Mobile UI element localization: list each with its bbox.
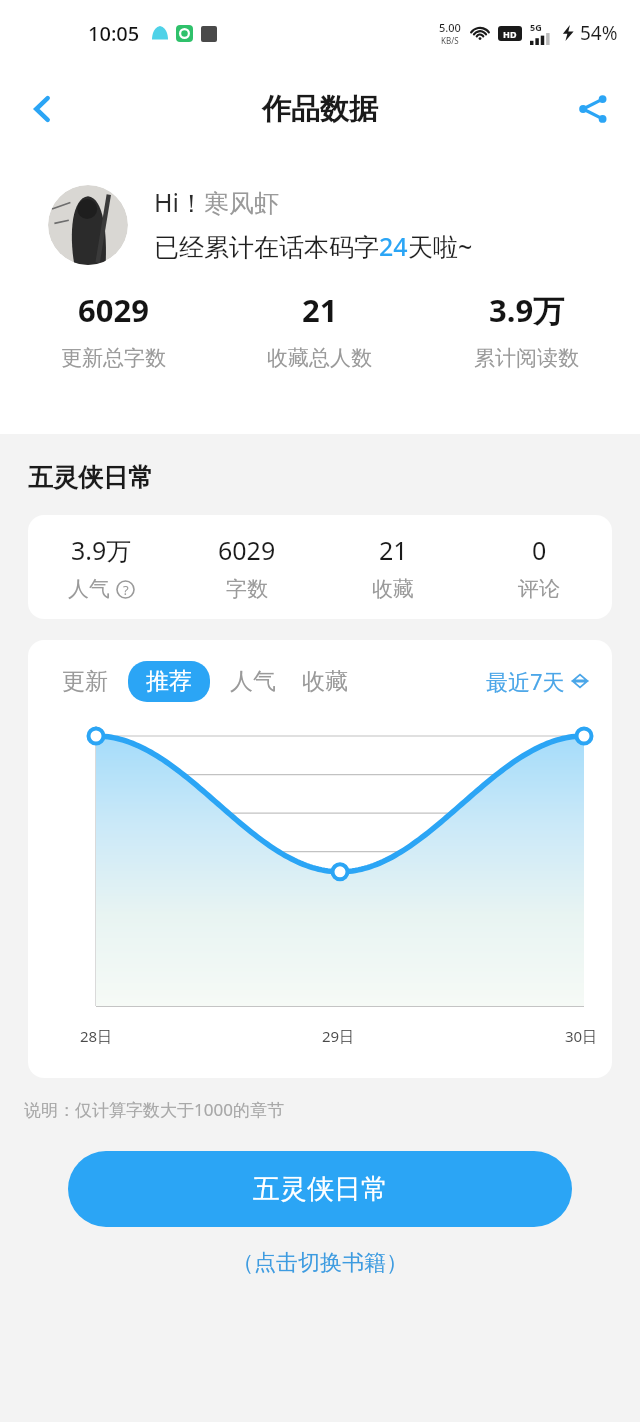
button[interactable]: Back bbox=[16, 82, 70, 136]
staticText: 更新总字数 bbox=[61, 345, 166, 371]
staticText: 字数 bbox=[226, 576, 268, 602]
staticText: 收藏总人数 bbox=[267, 345, 372, 371]
button[interactable]: （点击切换书籍） bbox=[224, 1241, 416, 1285]
button[interactable]: 3.9万 bbox=[28, 515, 612, 619]
button[interactable]: 3.9万 bbox=[28, 533, 174, 602]
staticText: 累计阅读数 bbox=[474, 345, 579, 371]
button[interactable]: 3.9万 bbox=[423, 289, 630, 371]
staticText: 6029 bbox=[218, 533, 276, 567]
button[interactable]: Share bbox=[566, 82, 620, 136]
staticText: 21 bbox=[302, 289, 338, 331]
staticText: 收藏 bbox=[372, 576, 414, 602]
button[interactable]: 推荐 bbox=[128, 661, 210, 702]
staticText: 5.00 bbox=[439, 20, 461, 35]
staticText: 24 bbox=[379, 229, 408, 263]
staticText: Hi！ bbox=[154, 185, 204, 219]
staticText: 天啦~ bbox=[408, 229, 473, 263]
button[interactable]: 21 bbox=[216, 289, 423, 371]
staticText: 说明：仅计算字数大于1000的章节 bbox=[24, 1098, 284, 1121]
staticText: 30日 bbox=[565, 1026, 598, 1046]
button[interactable]: 0 bbox=[466, 533, 612, 602]
button[interactable]: 6029 bbox=[174, 533, 320, 602]
staticText: 更新 bbox=[62, 667, 108, 696]
staticText: 3.9万 bbox=[489, 289, 565, 331]
button[interactable]: 五灵侠日常 bbox=[68, 1151, 572, 1227]
button[interactable]: 更新 bbox=[62, 661, 108, 702]
button[interactable]: 人气 bbox=[230, 661, 276, 702]
staticText: 最近7天 bbox=[486, 666, 565, 696]
staticText: HD bbox=[503, 28, 517, 40]
staticText: 已经累计在话本码字 bbox=[154, 232, 379, 263]
staticText: 五灵侠日常 bbox=[253, 1172, 388, 1206]
staticText: KB/S bbox=[441, 35, 459, 46]
staticText: 10:05 bbox=[88, 20, 140, 47]
staticText: 0 bbox=[532, 533, 547, 567]
staticText: 21 bbox=[379, 533, 408, 567]
button[interactable]: 收藏 bbox=[302, 661, 348, 702]
staticText: ? bbox=[123, 581, 129, 599]
staticText: （点击切换书籍） bbox=[232, 1249, 408, 1277]
button[interactable]: 最近7天 bbox=[486, 660, 588, 702]
staticText: 28日 bbox=[80, 1026, 113, 1046]
staticText: 人气 bbox=[230, 667, 276, 696]
staticText: 评论 bbox=[518, 576, 560, 602]
staticText: 寒风虾 bbox=[204, 188, 279, 219]
staticText: 五灵侠日常 bbox=[28, 462, 153, 493]
staticText: 3.9万 bbox=[71, 533, 132, 567]
staticText: 29日 bbox=[322, 1026, 355, 1046]
staticText: 5G bbox=[530, 21, 542, 33]
button[interactable]: 6029 bbox=[10, 289, 216, 371]
staticText: 6029 bbox=[78, 289, 149, 331]
staticText: 作品数据 bbox=[262, 91, 378, 128]
button[interactable]: 21 bbox=[320, 533, 466, 602]
button[interactable]: Avatar bbox=[48, 185, 128, 265]
staticText: 54% bbox=[580, 20, 618, 46]
staticText: 推荐 bbox=[146, 667, 192, 696]
staticText: 收藏 bbox=[302, 667, 348, 696]
staticText: 人气 bbox=[68, 576, 110, 602]
